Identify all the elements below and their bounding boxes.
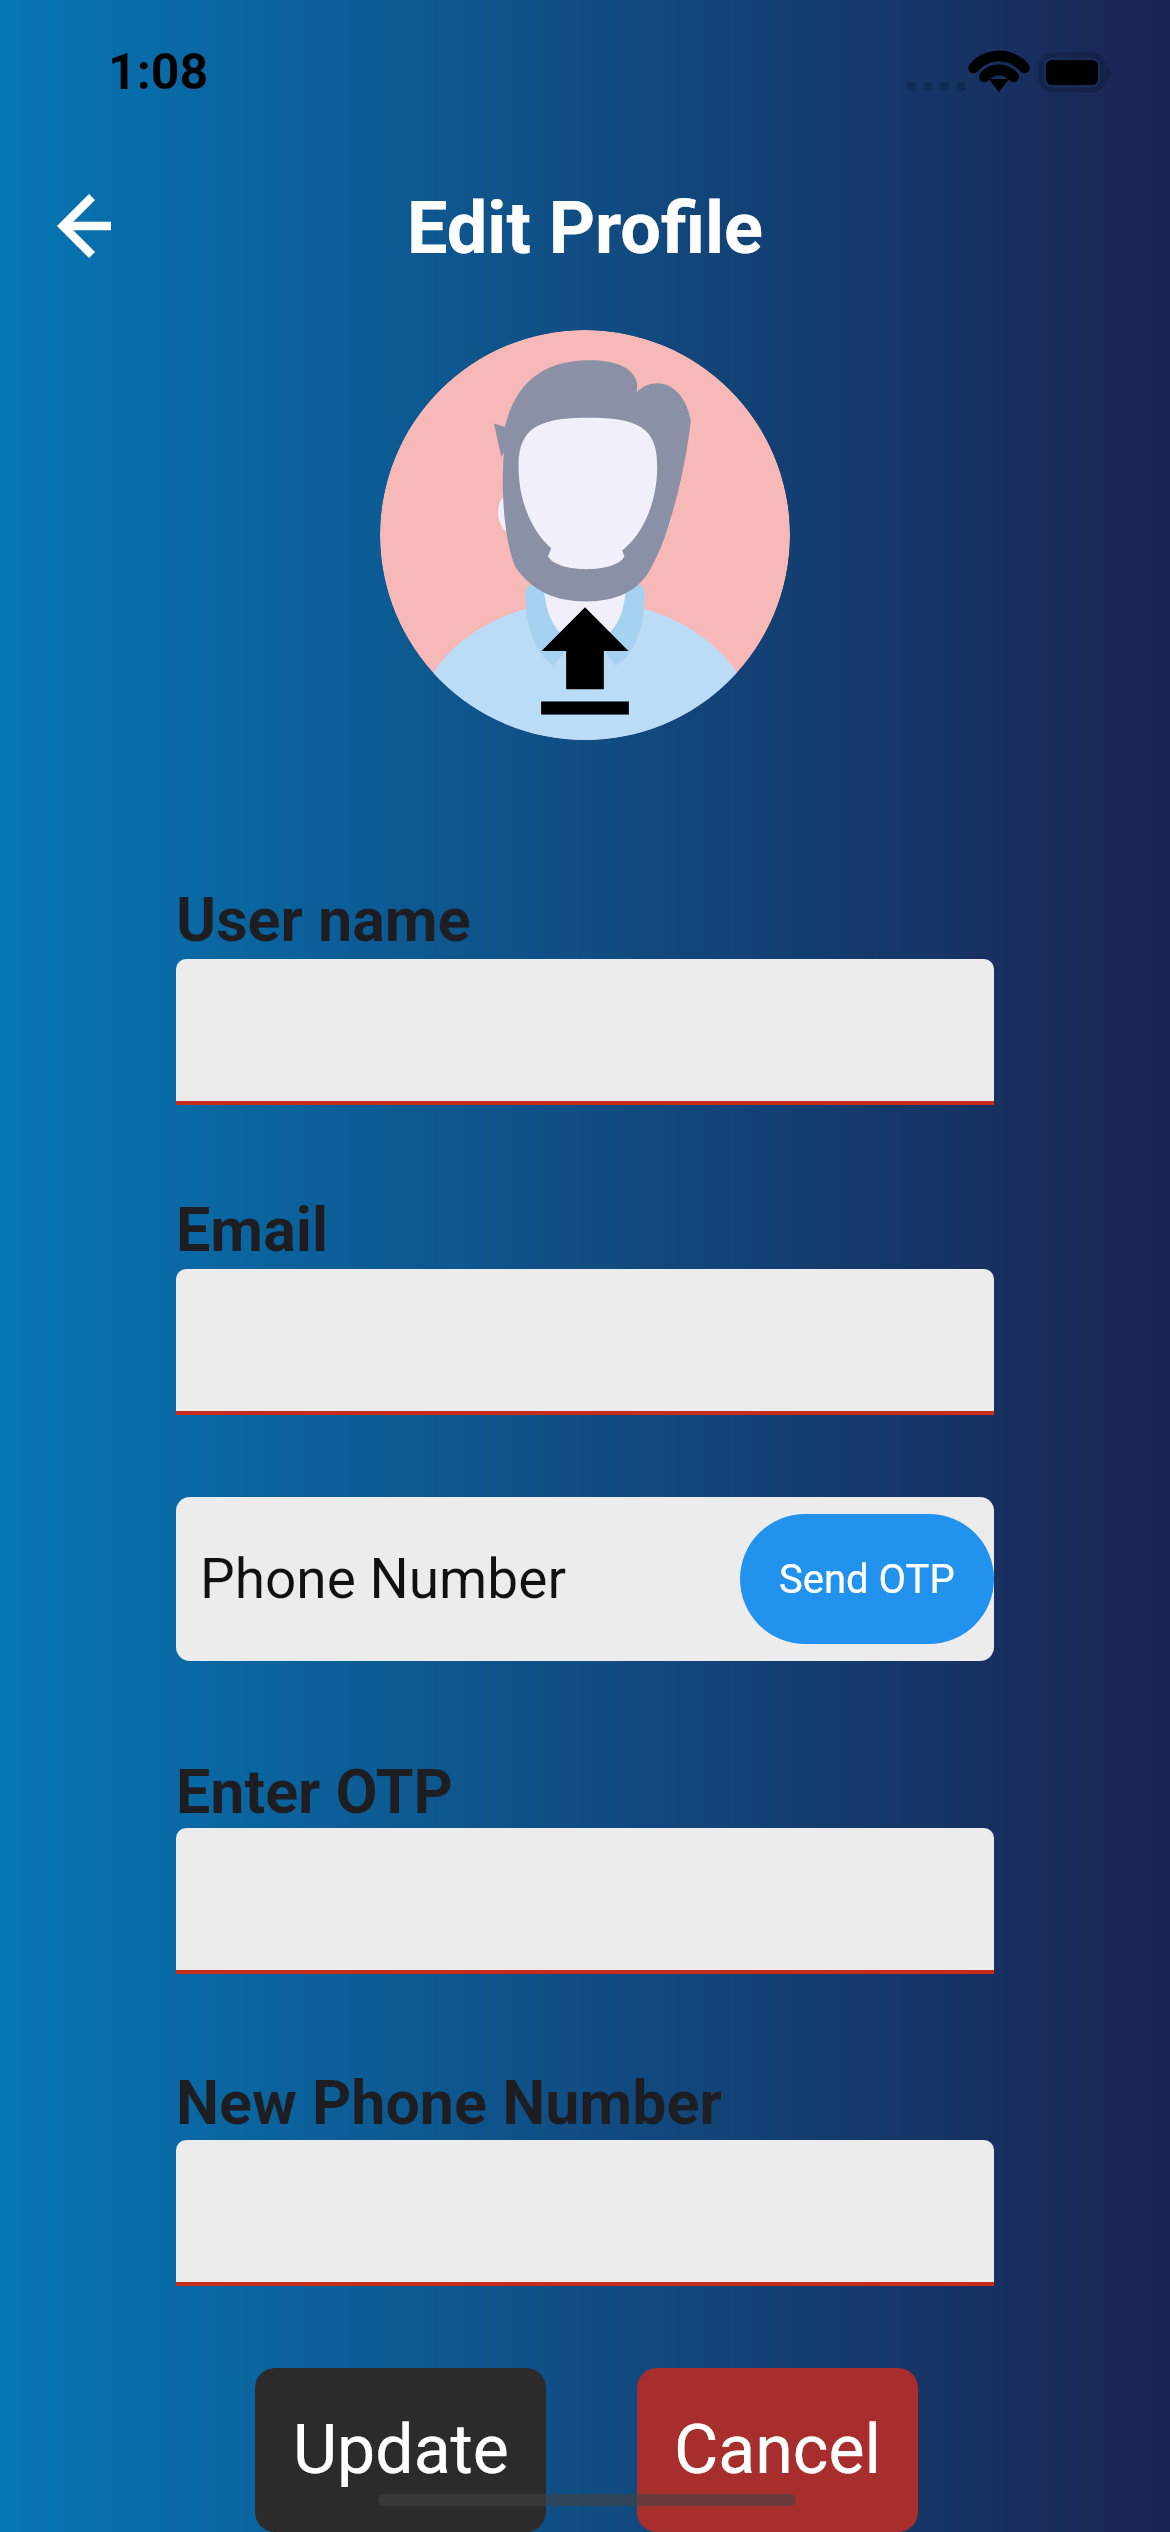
button[interactable]: Cancel	[637, 2368, 918, 2532]
button[interactable]: Change profile picture	[380, 330, 790, 740]
staticText: Send OTP	[779, 1556, 955, 1603]
button[interactable]: Phone Number	[176, 1497, 994, 1661]
staticText: Phone Number	[200, 1547, 567, 1611]
staticText: Edit Profile	[407, 186, 763, 270]
button[interactable]	[176, 2140, 994, 2282]
button[interactable]: Back	[40, 180, 132, 272]
button[interactable]: Update	[255, 2368, 546, 2532]
staticText: Enter OTP	[176, 1756, 453, 1827]
staticText: New Phone Number	[176, 2067, 722, 2138]
button[interactable]	[176, 959, 994, 1101]
button[interactable]: Send OTP	[740, 1514, 994, 1644]
button[interactable]	[176, 1828, 994, 1970]
button[interactable]	[176, 1269, 994, 1411]
staticText: Update	[293, 2410, 509, 2490]
staticText: Email	[176, 1194, 329, 1265]
staticText: Cancel	[674, 2410, 881, 2490]
staticText: 1:08	[108, 43, 209, 102]
staticText: User name	[176, 884, 471, 955]
